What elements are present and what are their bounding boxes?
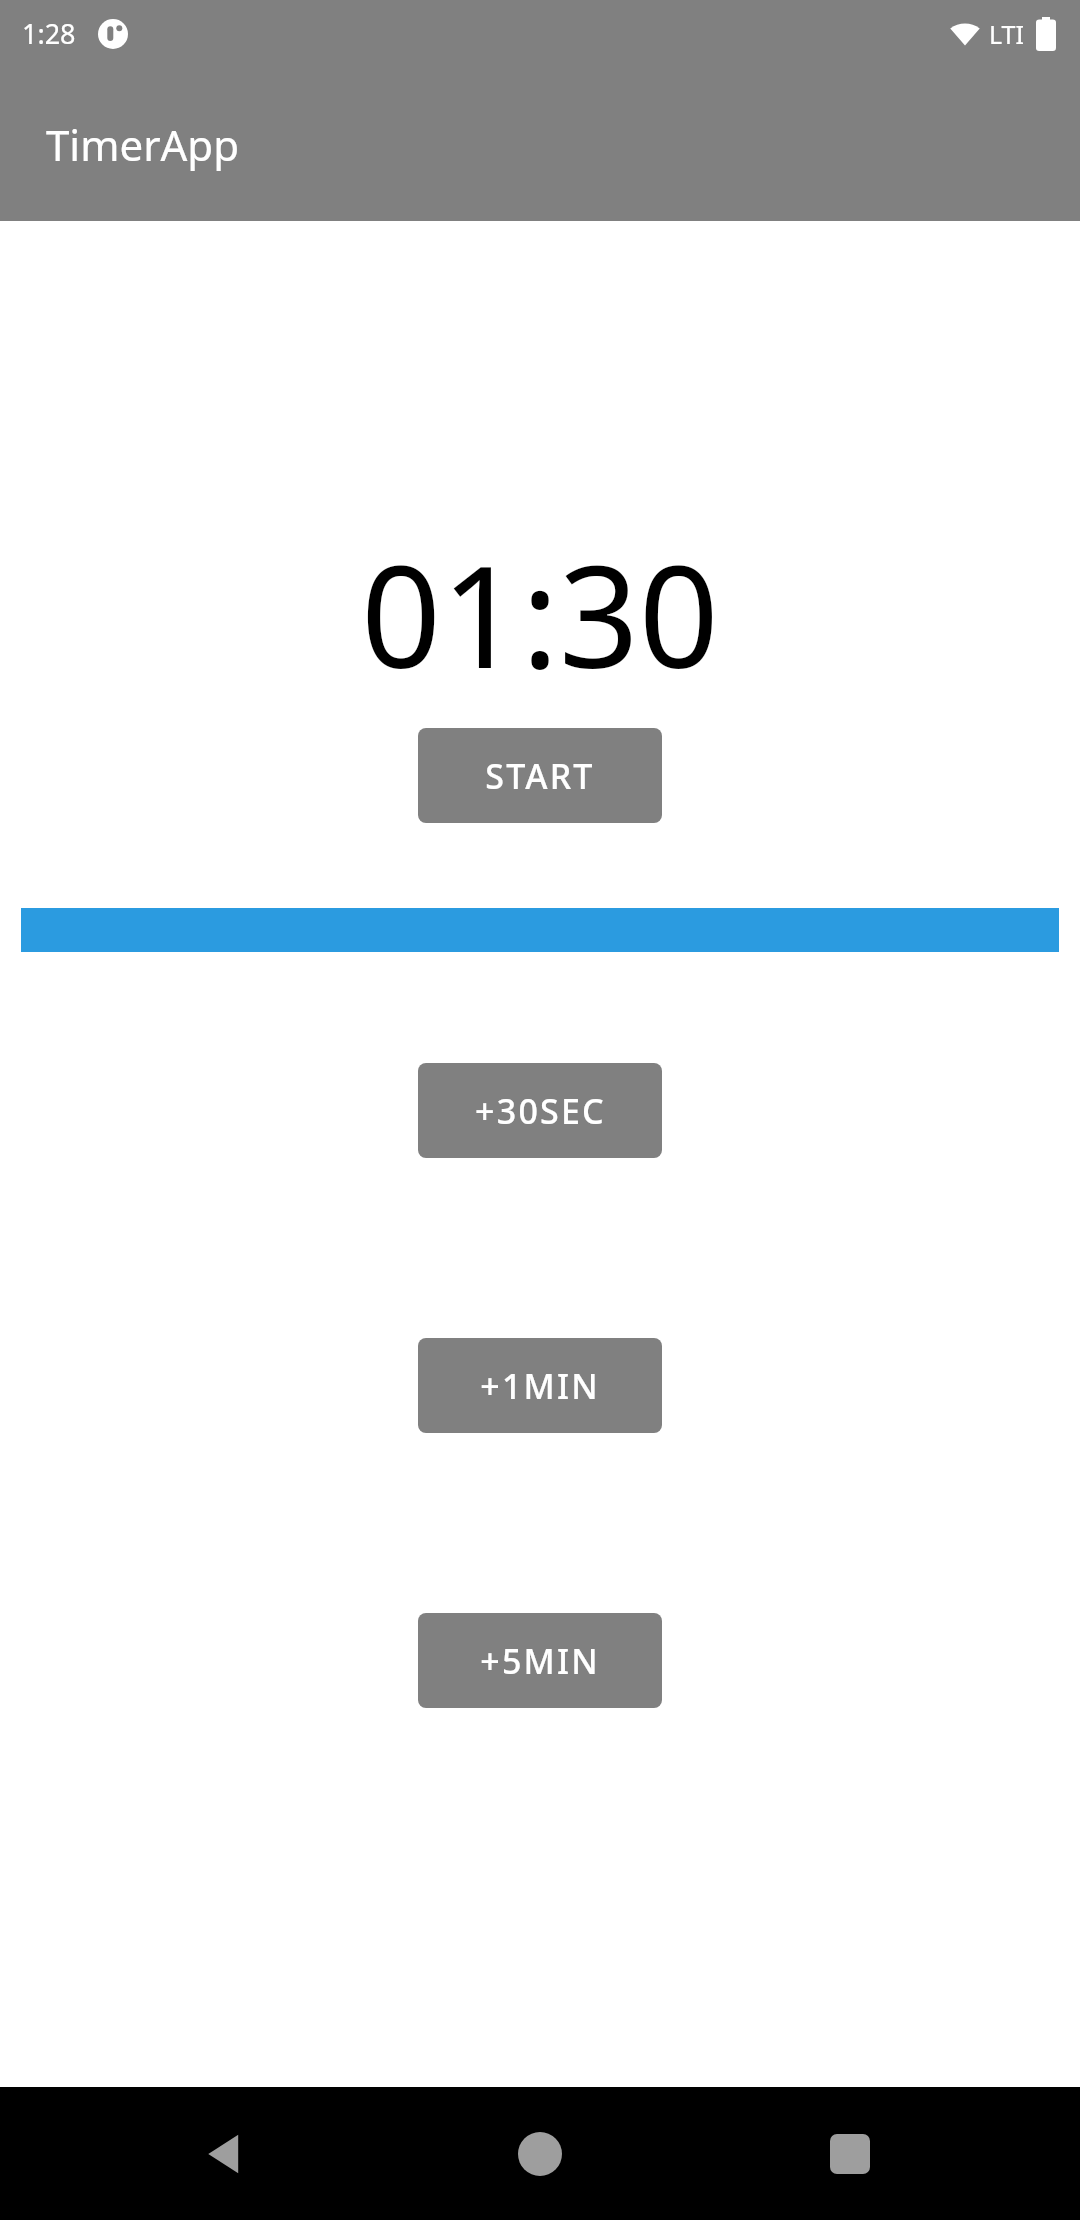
staticText: LTI (989, 17, 1024, 51)
staticText: 01:30 (0, 518, 1080, 709)
button[interactable]: +30SEC (418, 1063, 662, 1158)
button[interactable]: Home (495, 2109, 585, 2199)
button[interactable]: +1MIN (418, 1338, 662, 1433)
staticText: +30SEC (475, 1088, 606, 1134)
staticText: 1:28 (22, 15, 76, 52)
button[interactable]: +5MIN (418, 1613, 662, 1708)
button[interactable]: START (418, 728, 662, 823)
staticText: START (485, 753, 595, 799)
staticText: +1MIN (480, 1363, 600, 1409)
button[interactable]: Recent apps (805, 2109, 895, 2199)
staticText: +5MIN (480, 1638, 600, 1684)
staticText: TimerApp (46, 116, 239, 173)
button[interactable]: Back (180, 2109, 270, 2199)
